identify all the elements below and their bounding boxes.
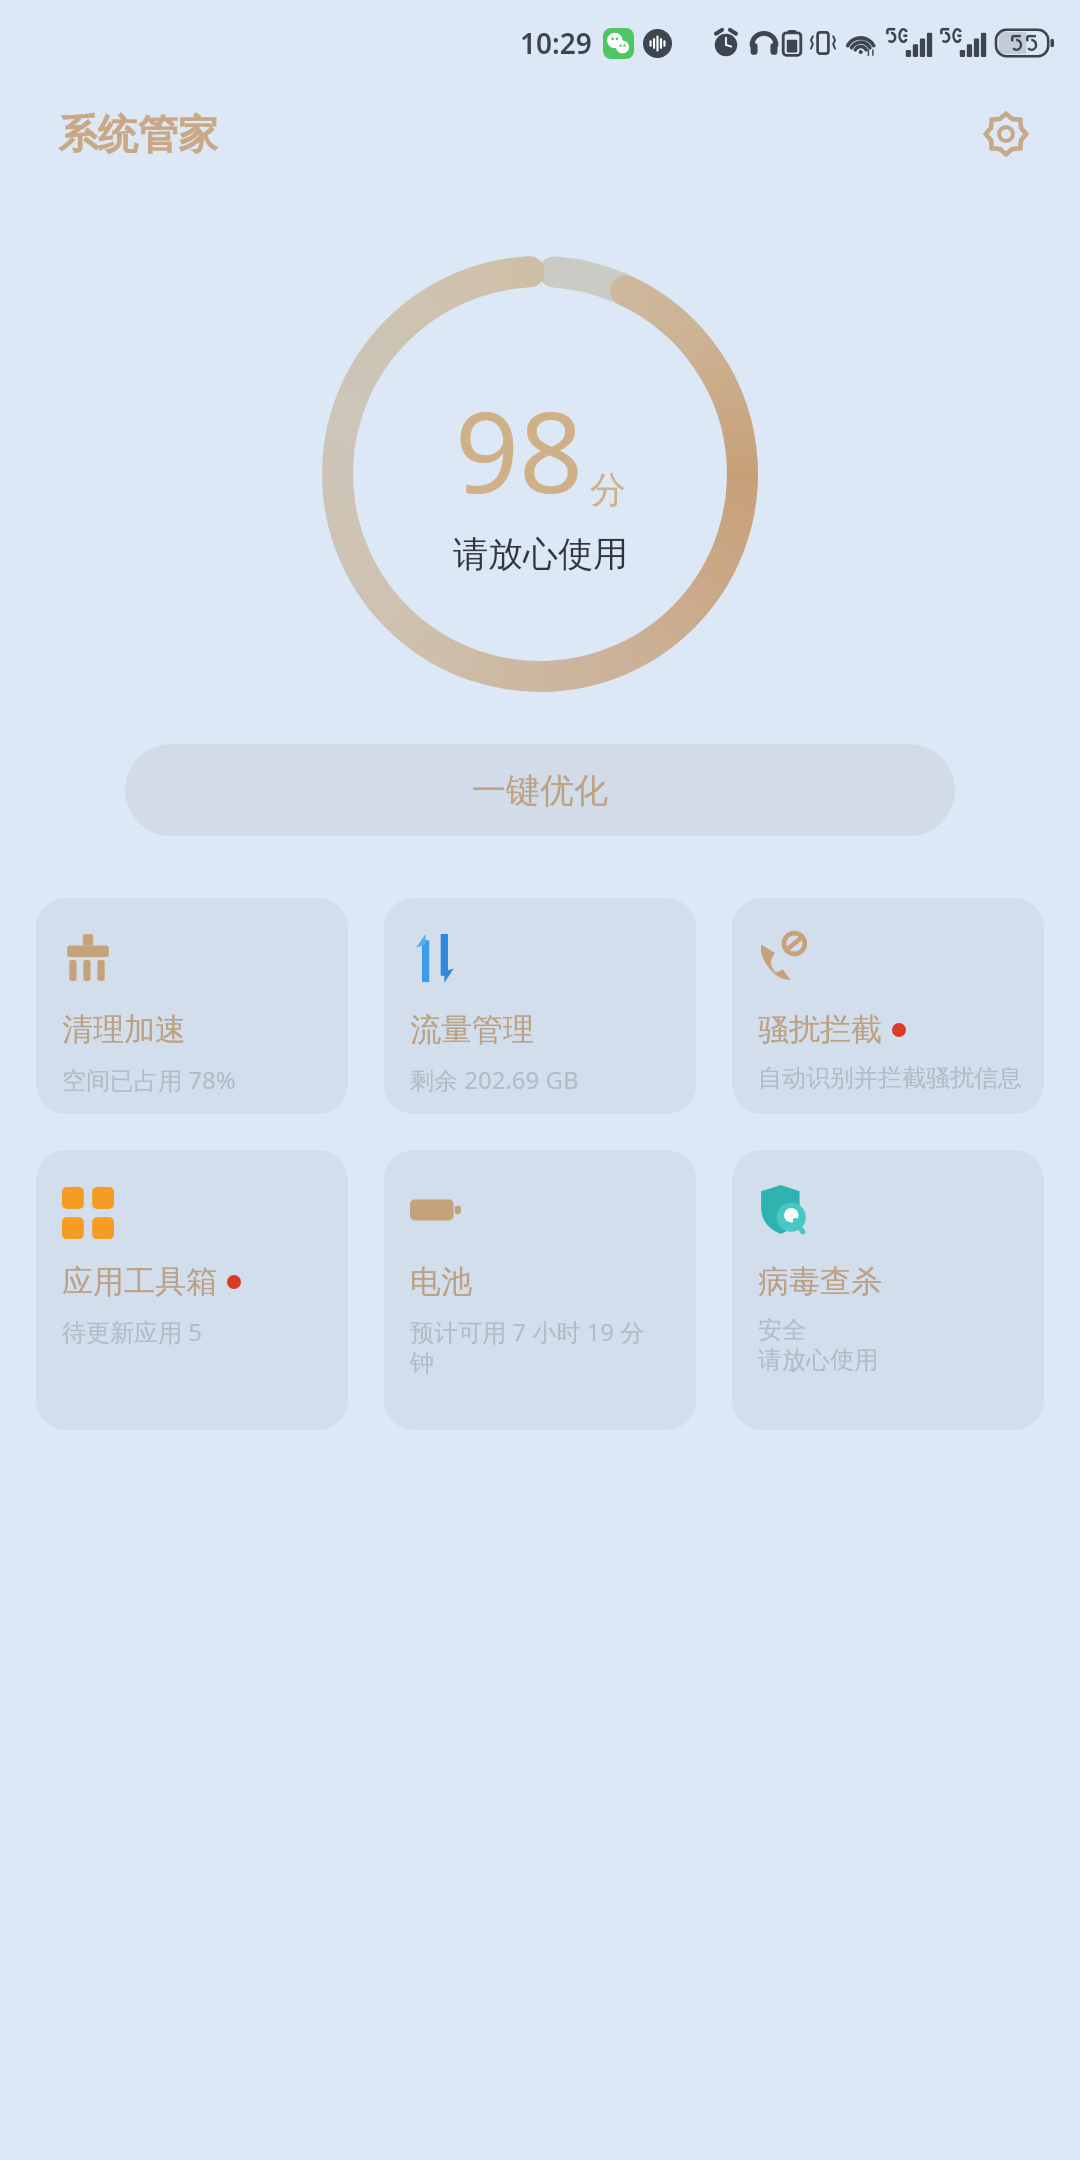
- staticText: 分: [590, 467, 626, 512]
- button[interactable]: 应用工具箱: [36, 1150, 348, 1430]
- button[interactable]: 电池: [384, 1150, 696, 1430]
- staticText: 一键优化: [472, 769, 608, 812]
- staticText: 请放心使用: [453, 532, 628, 576]
- button[interactable]: 病毒查杀: [732, 1150, 1044, 1430]
- staticText: 病毒查杀: [758, 1262, 882, 1301]
- staticText: 钟: [410, 1348, 434, 1378]
- staticText: 流量管理: [410, 1010, 534, 1049]
- staticText: 98: [455, 373, 584, 526]
- staticText: 自动识别并拦截骚扰信息: [758, 1063, 1022, 1093]
- staticText: 待更新应用 5: [62, 1315, 202, 1348]
- staticText: 应用工具箱: [62, 1262, 217, 1301]
- staticText: 10:29: [520, 24, 592, 62]
- button[interactable]: 骚扰拦截: [732, 898, 1044, 1114]
- button[interactable]: 清理加速: [36, 898, 348, 1114]
- staticText: 剩余 202.69 GB: [410, 1063, 579, 1096]
- button[interactable]: 流量管理: [384, 898, 696, 1114]
- button[interactable]: 一键优化: [125, 744, 955, 836]
- staticText: 预计可用 7 小时 19 分: [410, 1315, 645, 1348]
- staticText: 请放心使用: [758, 1345, 878, 1375]
- staticText: 空间已占用 78%: [62, 1063, 236, 1096]
- staticText: 骚扰拦截: [758, 1010, 882, 1049]
- staticText: 系统管家: [58, 109, 218, 159]
- staticText: 清理加速: [62, 1010, 186, 1049]
- button[interactable]: 设置: [978, 106, 1034, 162]
- staticText: 安全: [758, 1315, 806, 1345]
- staticText: 电池: [410, 1262, 472, 1301]
